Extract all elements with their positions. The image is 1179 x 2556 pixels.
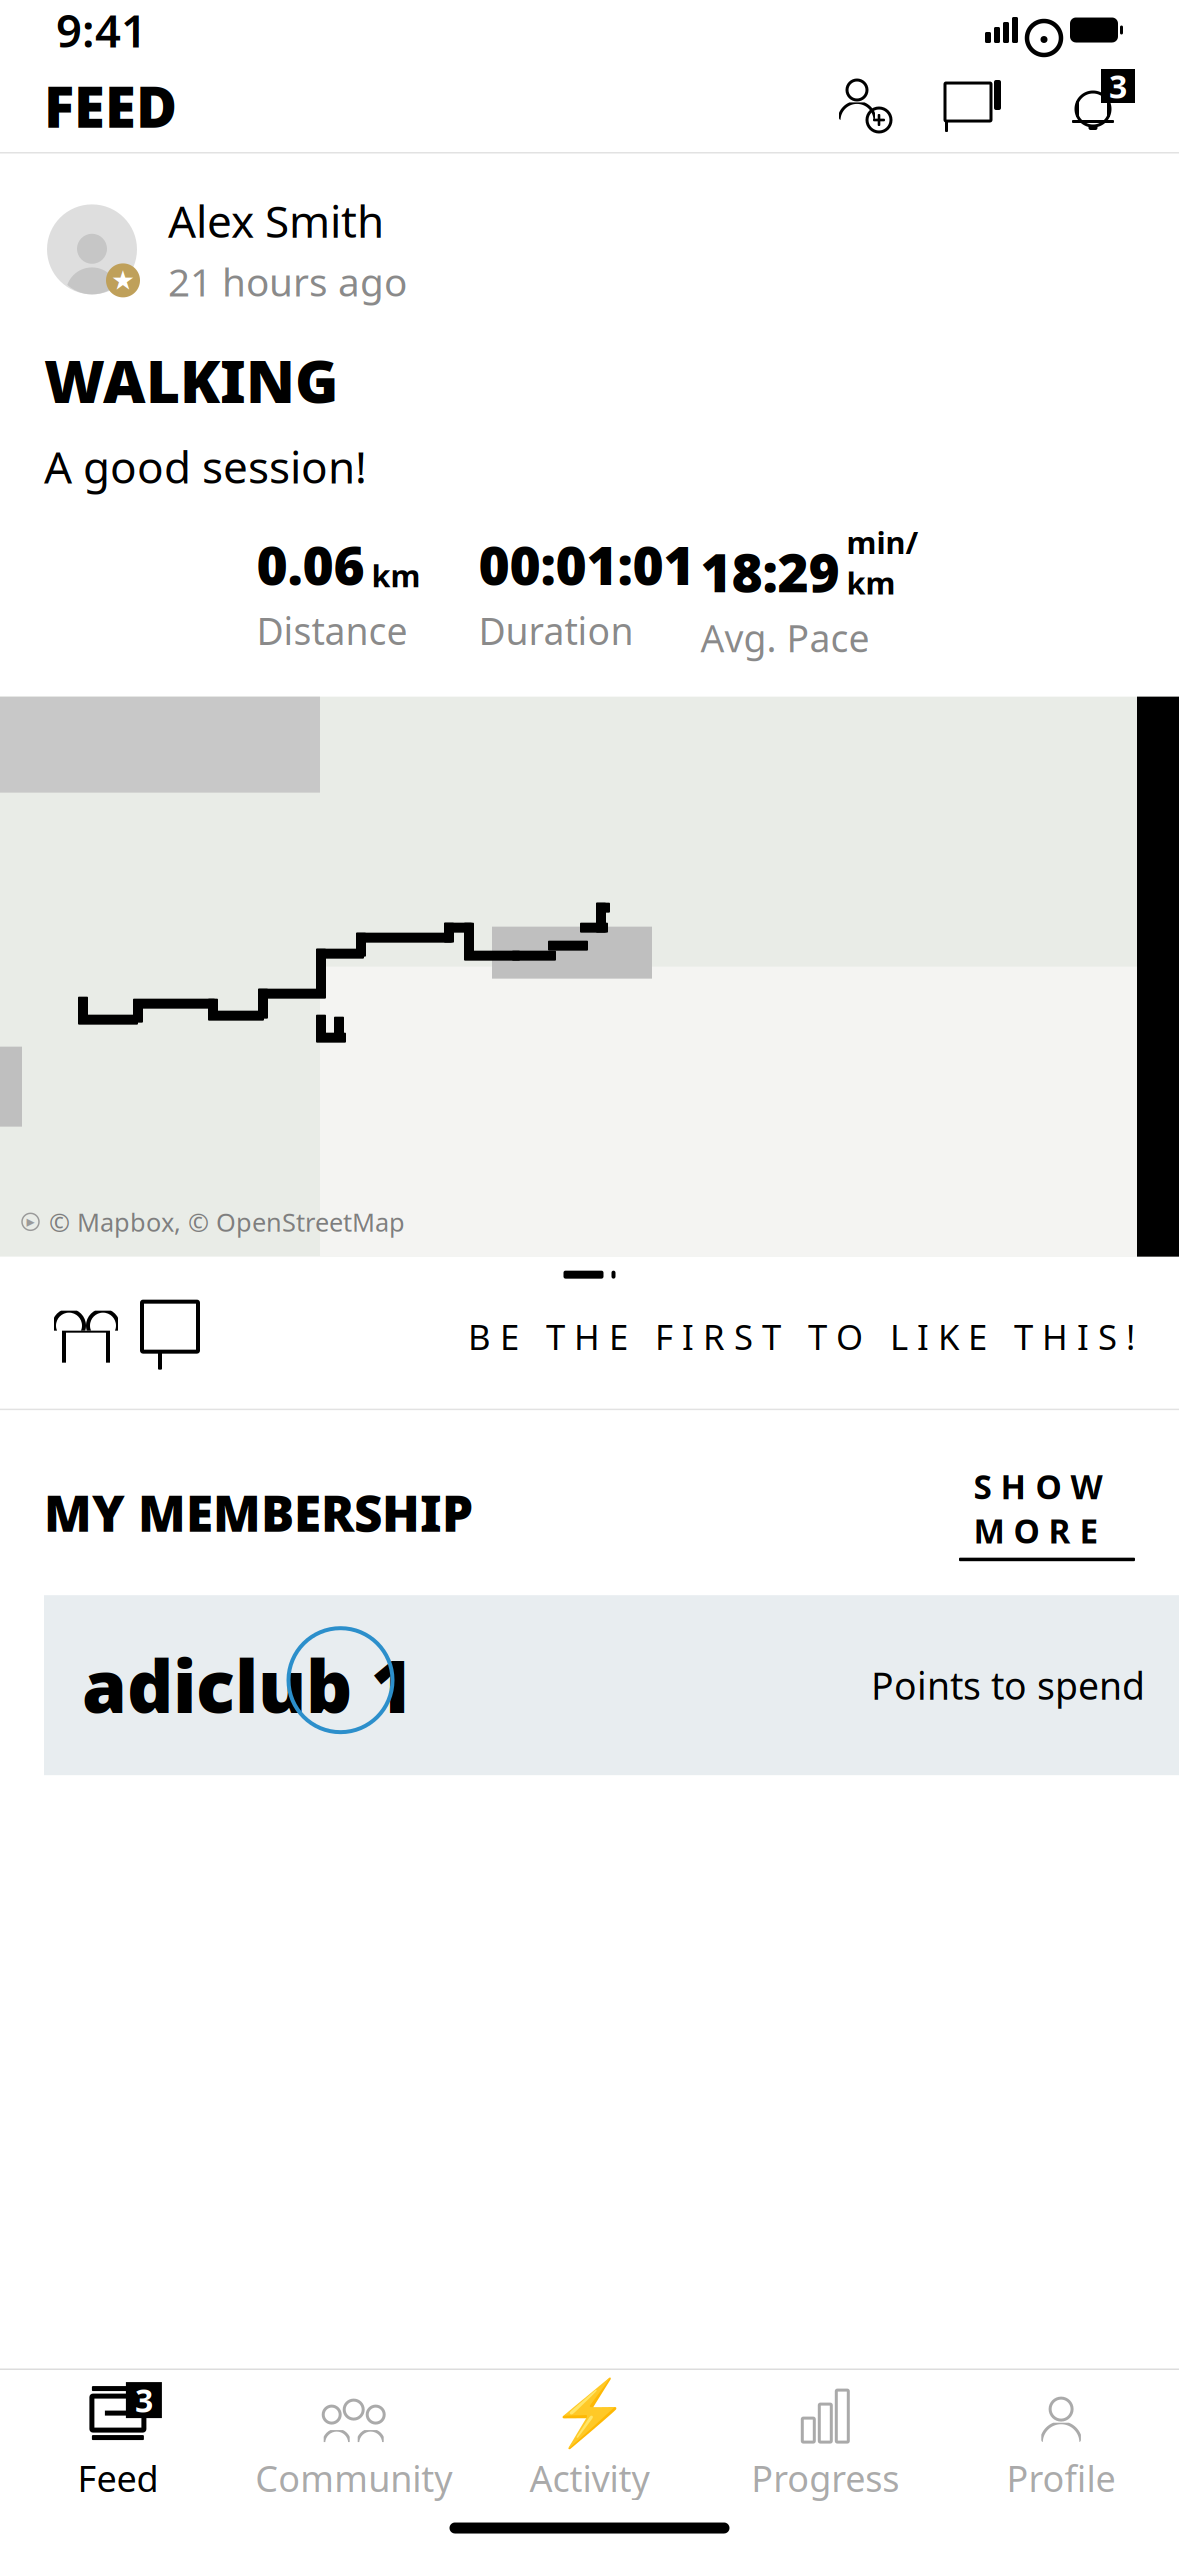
staticText: Feed [77, 2454, 158, 2502]
staticText: 18:29 [700, 536, 839, 607]
staticText: Avg. Pace [700, 613, 869, 663]
staticText: B E T H E F I R S T T O L I K E T H I S … [468, 1314, 1135, 1360]
staticText: 3 [1109, 65, 1127, 107]
staticText: 21 hours ago [168, 256, 407, 307]
staticText: Alex Smith [168, 191, 384, 250]
staticText: MY MEMBERSHIP [44, 1480, 473, 1545]
staticText: adiclub 1 [82, 1637, 413, 1733]
staticText: ⚡ [549, 2376, 629, 2450]
button[interactable]: ⚡ [472, 2368, 707, 2502]
button[interactable]: Profile [943, 2368, 1179, 2502]
staticText: Community [255, 2454, 452, 2502]
button[interactable]: Comment [128, 1295, 212, 1379]
button[interactable]: S H O W M O R E [959, 1464, 1135, 1561]
button[interactable]: Add friends [831, 74, 895, 138]
button[interactable]: Progress [707, 2368, 943, 2502]
staticText: S H O W M O R E [973, 1464, 1120, 1553]
button[interactable]: New post [941, 74, 1005, 138]
staticText: A good session! [44, 437, 367, 496]
staticText: km [371, 555, 420, 596]
staticText: Duration [478, 606, 633, 655]
staticText: Progress [751, 2454, 899, 2502]
staticText: Activity [529, 2454, 649, 2502]
staticText: © Mapbox, © OpenStreetMap [49, 1205, 405, 1239]
staticText: 3 [135, 2379, 153, 2421]
staticText: min/km [846, 522, 918, 603]
staticText: Profile [1007, 2454, 1116, 2502]
button[interactable]: Notifications, 3 new [1051, 69, 1135, 143]
button[interactable]: 3 [0, 2368, 236, 2502]
staticText: 0.06 [256, 529, 364, 600]
staticText: ▶ [26, 1216, 34, 1228]
staticText: 9:41 [56, 0, 147, 60]
staticText: WALKING [44, 341, 338, 419]
staticText: Points to spend [871, 1660, 1145, 1710]
staticText: 00:01:01 [478, 529, 694, 600]
button[interactable]: Like [44, 1295, 128, 1379]
button[interactable]: Community [236, 2368, 472, 2502]
staticText: FEED [44, 69, 177, 143]
staticText: ★ [111, 265, 135, 296]
staticText: Distance [256, 606, 407, 655]
